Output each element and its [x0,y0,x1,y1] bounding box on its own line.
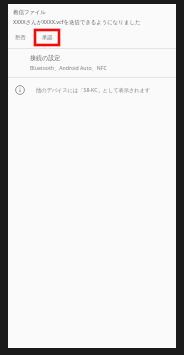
button[interactable]: 承認 [35,30,59,45]
staticText: 接続の設定 [30,54,61,62]
button[interactable]: 拒否 [13,32,28,43]
staticText: 拒否 [15,34,26,41]
staticText: 承認 [42,34,53,41]
staticText: XXXXさんがXXXX.vcfを送信できるようになりました [13,18,141,25]
button[interactable]: 接続の設定 [8,49,176,77]
other: Information [14,84,25,95]
staticText: 他のデバイスには「S8-KC」として表示されます [36,86,151,93]
staticText: 着信ファイル [13,9,46,16]
staticText: Bluetooth、Android Auto、NFC [30,64,107,71]
